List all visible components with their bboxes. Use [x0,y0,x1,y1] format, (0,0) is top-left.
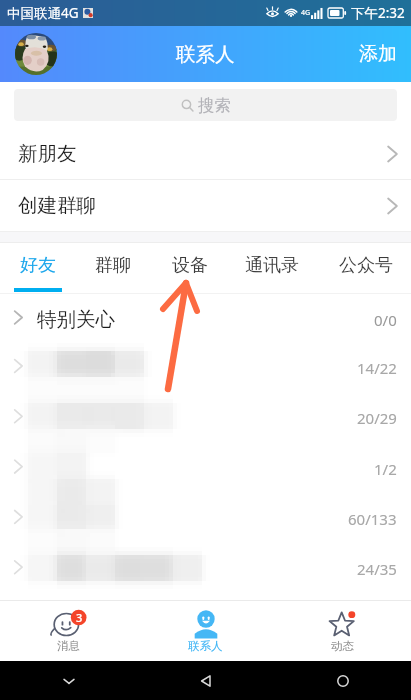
button[interactable]: 群聊 [83,243,143,288]
staticText: 搜索 [198,95,231,116]
staticText: 4G [301,8,311,18]
button[interactable]: Home [274,661,411,700]
staticText: 特别关心 [37,307,115,332]
staticText: 联系人 [188,639,223,653]
button[interactable]: Hide keyboard [0,661,137,700]
button[interactable]: 搜索 [14,89,397,121]
staticText: 24/35 [357,559,397,579]
button[interactable]: 添加 [0,26,411,82]
staticText: 联系人 [176,42,235,67]
button[interactable]: 特别关心 [0,294,411,345]
staticText: 新朋友 [18,141,77,166]
button[interactable]: 通讯录 [234,243,310,288]
staticText: 14/22 [357,358,397,378]
staticText: 20/29 [357,408,397,428]
staticText: 3 [76,610,83,625]
staticText: 中国联通4G [7,4,79,22]
staticText: 添加 [359,42,397,66]
button[interactable]: 联系人 [137,601,274,661]
staticText: 通讯录 [245,254,299,277]
button[interactable]: Back [137,661,274,700]
staticText: 创建群聊 [18,193,96,218]
button[interactable]: 公众号 [328,243,404,288]
staticText: 群聊 [95,254,131,277]
staticText: 动态 [331,639,354,653]
staticText: 下午2:32 [351,4,405,22]
staticText: 设备 [172,254,208,277]
staticText: 好友 [20,254,56,277]
button[interactable]: 创建群聊 [0,180,411,231]
button[interactable]: 新朋友 [0,128,411,179]
button[interactable]: 3 [0,601,137,661]
button[interactable]: 好友 [8,243,68,288]
button[interactable]: 动态 [274,601,411,661]
staticText: 1/2 [374,459,397,479]
staticText: 公众号 [339,254,393,277]
button[interactable]: Profile [15,33,57,75]
staticText: 0/0 [374,310,397,330]
button[interactable]: 设备 [160,243,220,288]
staticText: 消息 [57,639,80,653]
staticText: 60/133 [348,509,397,529]
